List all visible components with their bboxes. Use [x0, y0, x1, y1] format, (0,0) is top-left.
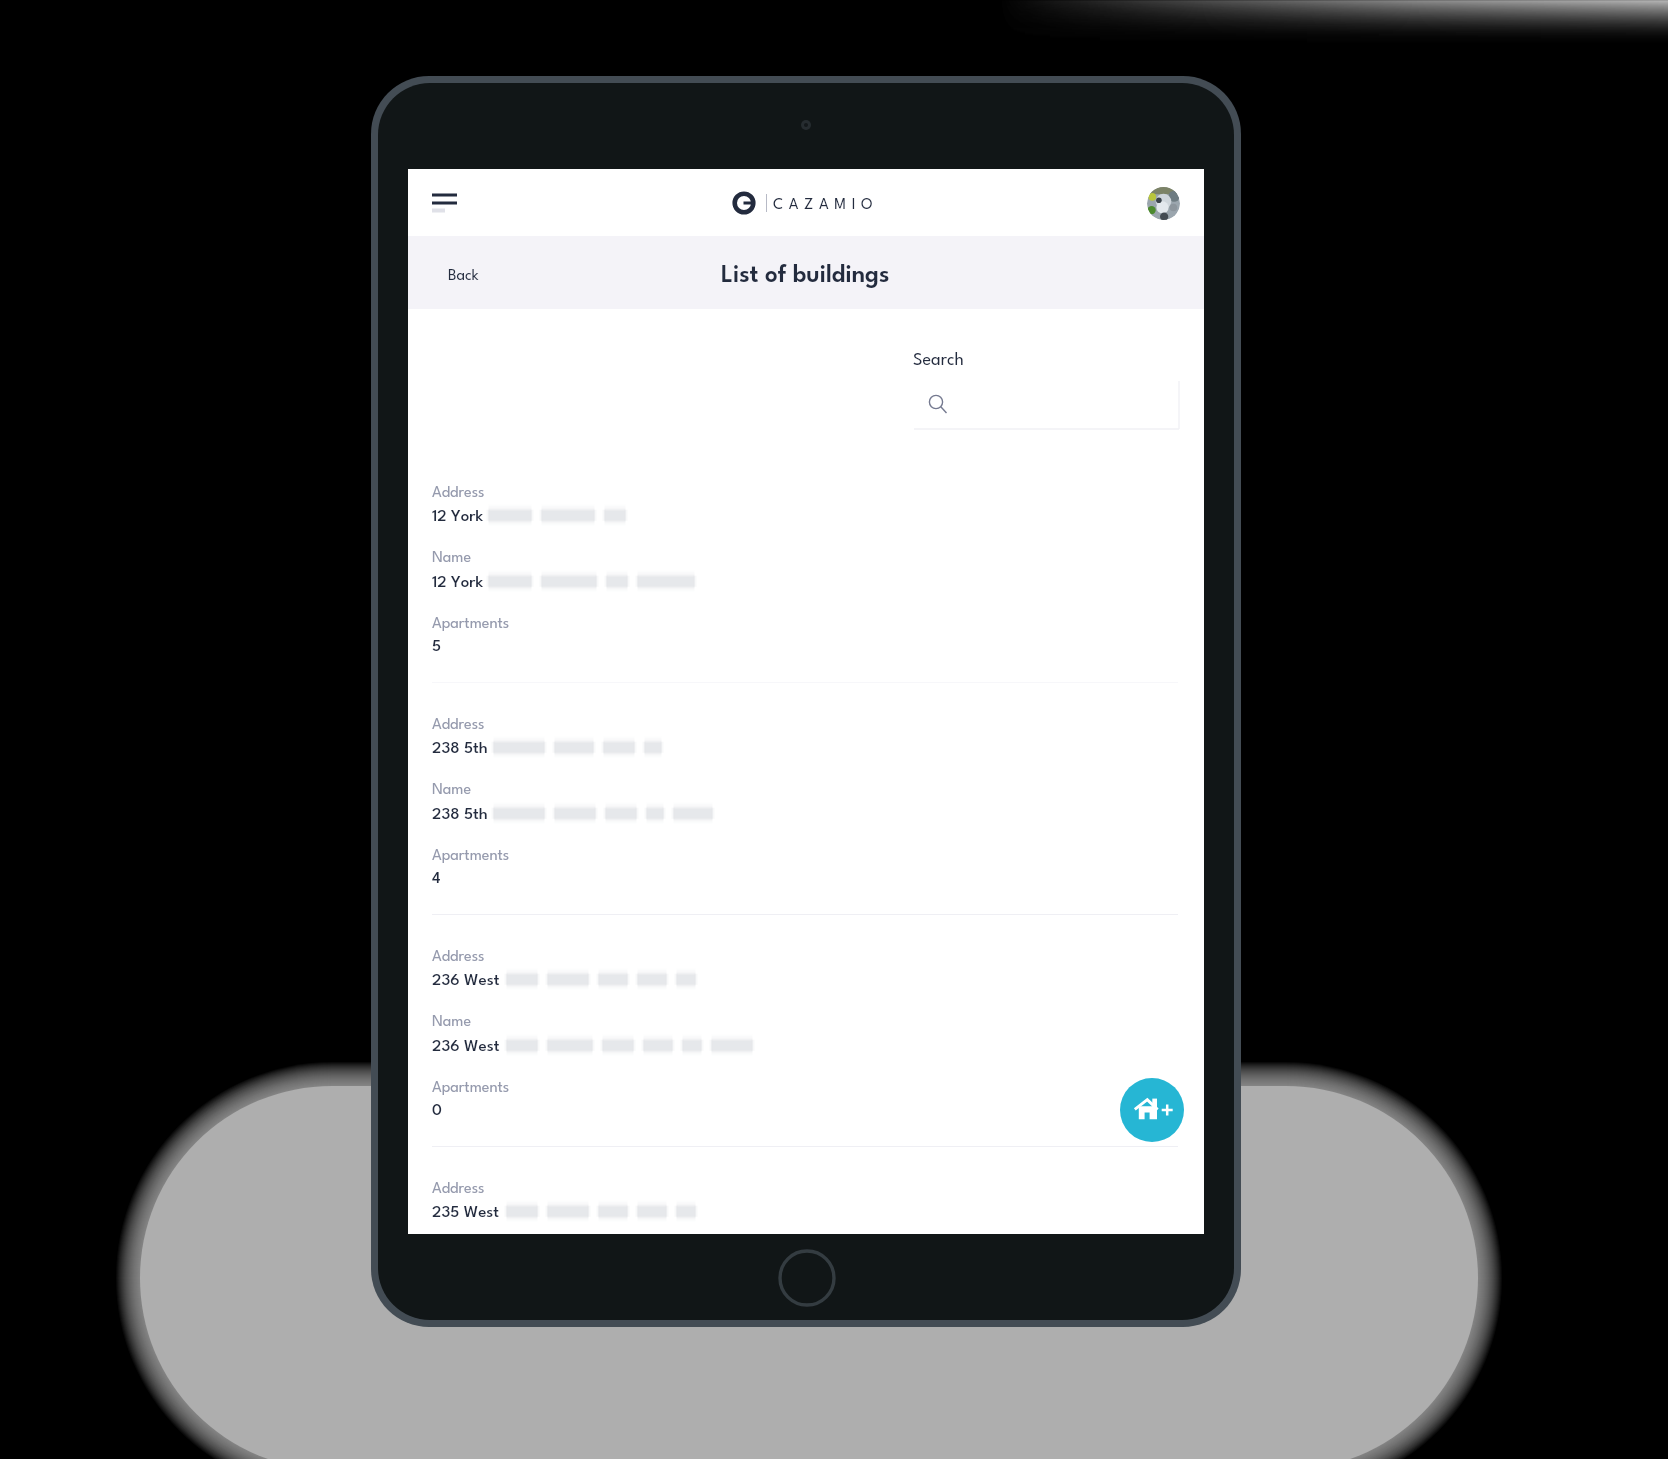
button[interactable]: Open navigation menu — [424, 182, 466, 222]
button[interactable]: Add building — [1120, 1078, 1184, 1142]
staticText: List of buildings — [721, 264, 890, 287]
staticText: Address — [432, 1182, 485, 1197]
staticText: 12 York — [432, 575, 484, 591]
button[interactable] — [408, 1161, 1204, 1234]
staticText: Apartments — [432, 849, 510, 864]
staticText: Address — [432, 950, 485, 965]
staticText: 238 5th — [432, 807, 488, 823]
staticText: Apartments — [432, 1081, 510, 1096]
staticText: Search — [913, 352, 964, 369]
staticText: Apartments — [432, 617, 510, 632]
staticText: 5 — [432, 639, 442, 655]
staticText: Name — [432, 1015, 472, 1030]
staticText: Address — [432, 718, 485, 733]
button[interactable]: Account — [1147, 187, 1180, 220]
button[interactable] — [436, 258, 494, 290]
staticText: Back — [448, 269, 479, 284]
button[interactable] — [408, 697, 1204, 913]
staticText: Address — [432, 486, 485, 501]
staticText: 236 West — [432, 973, 500, 989]
staticText: 236 West — [432, 1039, 500, 1055]
button[interactable] — [408, 929, 1204, 1145]
staticText: CAZAMIO — [773, 198, 879, 213]
staticText: 235 West — [432, 1205, 500, 1221]
button[interactable] — [408, 465, 1204, 681]
staticText: 0 — [432, 1103, 442, 1119]
staticText: 238 5th — [432, 741, 488, 757]
staticText: Name — [432, 783, 472, 798]
staticText: 4 — [432, 871, 441, 887]
staticText: Name — [432, 551, 472, 566]
button[interactable]: Search — [914, 379, 1179, 429]
staticText: 12 York — [432, 509, 484, 525]
